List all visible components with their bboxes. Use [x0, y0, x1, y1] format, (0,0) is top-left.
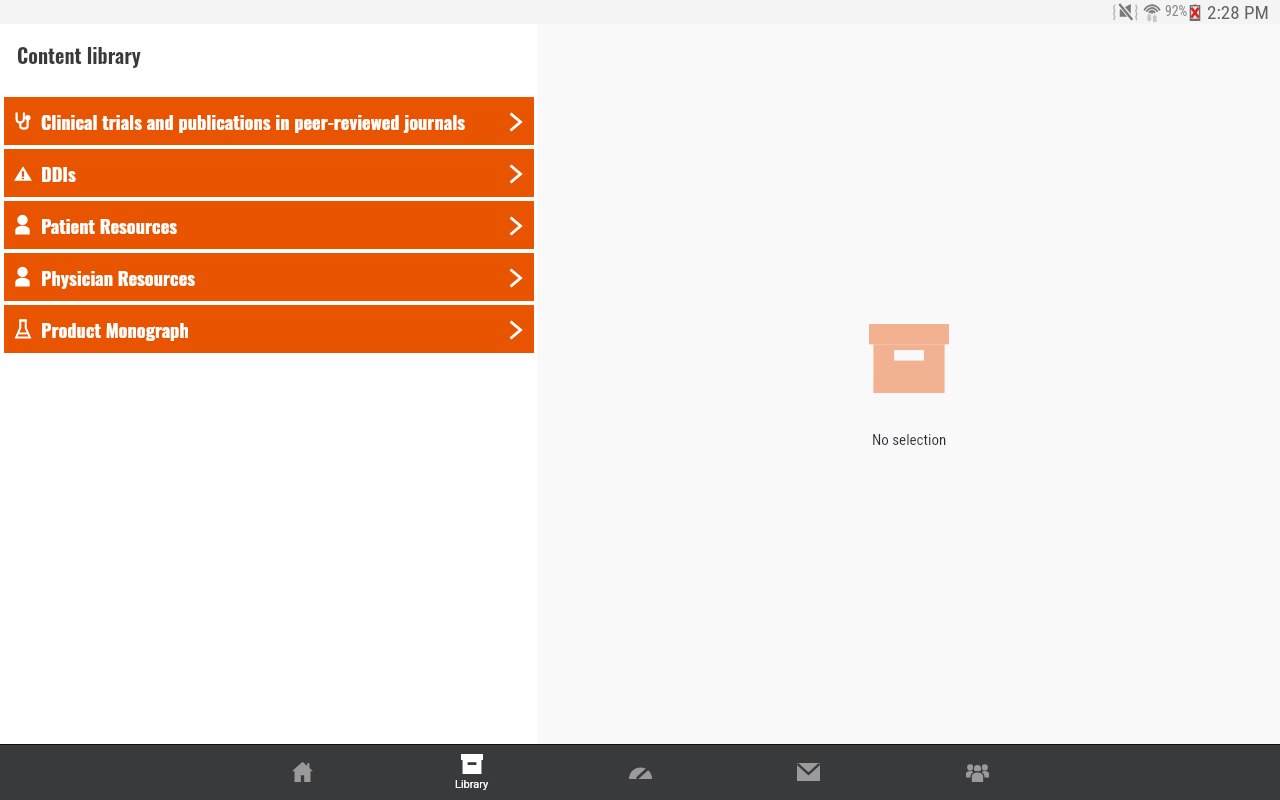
staticText: Clinical trials and publications in peer…	[41, 108, 466, 135]
button[interactable]: DDIs	[4, 149, 534, 197]
button[interactable]: Patient Resources	[4, 201, 534, 249]
staticText: Library	[455, 778, 489, 791]
button[interactable]: Home	[218, 745, 387, 800]
button[interactable]: Dashboard	[556, 745, 724, 800]
staticText: Content library	[17, 40, 141, 70]
button[interactable]: Clinical trials and publications in peer…	[4, 97, 534, 145]
button[interactable]: Mail	[724, 745, 893, 800]
staticText: 2:28 PM	[1207, 1, 1269, 23]
staticText: 92%	[1165, 3, 1188, 19]
staticText: Product Monograph	[41, 316, 189, 343]
staticText: Patient Resources	[41, 212, 178, 239]
button[interactable]: Groups	[893, 745, 1061, 800]
button[interactable]: Product Monograph	[4, 305, 534, 353]
button[interactable]: Library	[387, 745, 556, 800]
staticText: No selection	[872, 431, 947, 449]
staticText: DDIs	[41, 160, 76, 187]
staticText: Physician Resources	[41, 264, 196, 291]
button[interactable]: Physician Resources	[4, 253, 534, 301]
